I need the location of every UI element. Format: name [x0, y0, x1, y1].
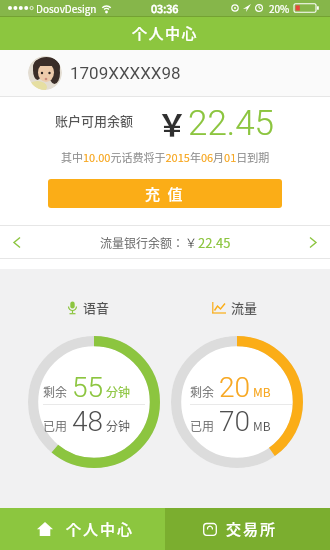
staticText: 55 — [72, 371, 104, 404]
staticText: 交易所 — [226, 518, 278, 540]
button[interactable]: 交易所 — [165, 508, 330, 550]
staticText: MB — [253, 417, 271, 434]
staticText: ￥ — [185, 234, 198, 251]
staticText: DosovDesign — [36, 1, 97, 15]
staticText: 已用 — [43, 417, 68, 434]
staticText: 22.45 — [198, 233, 231, 252]
staticText: 03:36 — [151, 0, 179, 16]
staticText: 22.45 — [188, 103, 275, 144]
button[interactable]: 充 值 — [48, 179, 282, 208]
button[interactable]: 账户可用余额 — [0, 97, 330, 144]
staticText: 分钟 — [106, 417, 131, 434]
staticText: 流量 — [231, 298, 258, 317]
staticText: 个人中心 — [132, 22, 199, 44]
staticText: 流量银行余额： — [100, 234, 185, 251]
staticText: 充 值 — [145, 183, 185, 205]
button[interactable]: 个人中心 — [0, 508, 165, 550]
staticText: 已用 — [190, 417, 215, 434]
staticText: 剩余 — [43, 383, 68, 400]
button[interactable]: 1709XXXXX98 — [0, 50, 330, 96]
staticText: 70 — [219, 405, 251, 438]
staticText: 其中10.00元话费将于2015年06月01日到期 — [61, 149, 270, 165]
staticText: 剩余 — [190, 383, 215, 400]
staticText: 20 — [219, 371, 251, 404]
staticText: 1709XXXXX98 — [70, 63, 181, 83]
staticText: ￥ — [157, 101, 187, 144]
staticText: MB — [253, 383, 271, 400]
button[interactable]: 流量银行余额： — [0, 226, 330, 258]
staticText: 语音 — [83, 298, 110, 317]
staticText: 账户可用余额 — [55, 111, 134, 130]
staticText: 20% — [269, 1, 290, 15]
staticText: 分钟 — [106, 383, 131, 400]
staticText: 48 — [72, 405, 104, 438]
staticText: 个人中心 — [66, 518, 135, 540]
